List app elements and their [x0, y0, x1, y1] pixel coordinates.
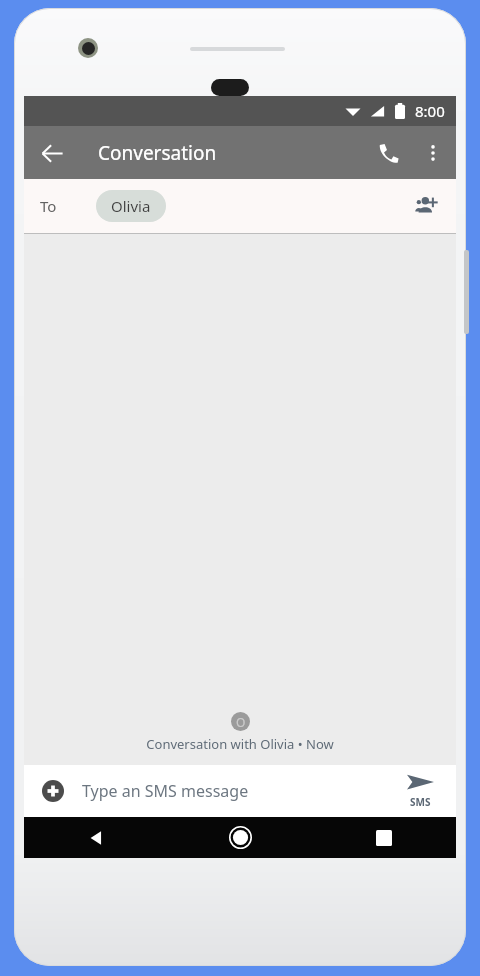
- staticText: SMS: [410, 795, 431, 809]
- button[interactable]: Navigate up: [30, 131, 74, 175]
- staticText: To: [40, 196, 57, 216]
- button[interactable]: Attach: [32, 770, 74, 812]
- staticText: Olivia: [111, 196, 151, 216]
- button[interactable]: Call: [366, 130, 412, 176]
- staticText: O: [236, 714, 246, 730]
- staticText: Type an SMS message: [82, 780, 249, 802]
- button[interactable]: Recent apps: [312, 817, 456, 858]
- staticText: 8:00: [415, 101, 445, 121]
- button[interactable]: Send SMS: [394, 765, 446, 817]
- button[interactable]: Back: [24, 817, 168, 858]
- button[interactable]: Add people: [406, 185, 448, 227]
- button[interactable]: Home: [168, 817, 312, 858]
- staticText: Conversation: [98, 140, 217, 166]
- button[interactable]: More options: [412, 132, 454, 174]
- button[interactable]: Olivia: [96, 190, 166, 222]
- staticText: Conversation with Olivia • Now: [146, 735, 334, 753]
